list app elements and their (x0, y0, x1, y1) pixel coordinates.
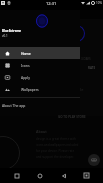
button[interactable]: Back (56, 168, 71, 183)
button[interactable]: Recents (9, 168, 24, 183)
staticText: 12:31 (46, 1, 57, 6)
staticText: 3 DAYS (81, 57, 91, 61)
button[interactable]: Icons (0, 59, 80, 71)
staticText: Wallpapers (21, 87, 39, 92)
staticText: Google (70, 87, 84, 92)
button[interactable]: About The app (0, 99, 80, 111)
button[interactable]: Apply (0, 71, 80, 83)
staticText: About (36, 129, 47, 134)
staticText: GO TO PLAY STORE (58, 115, 86, 119)
staticText: About The app (2, 103, 26, 108)
staticText: v0.1 (2, 34, 8, 38)
button[interactable]: Screenshot (79, 168, 94, 183)
button[interactable]: Apply theme (88, 154, 100, 166)
button[interactable]: Wallpapers (0, 83, 80, 95)
staticText: design is a great theme with icons and w… (36, 137, 79, 159)
staticText: Apply (21, 75, 30, 80)
staticText: 10% (96, 1, 102, 5)
button[interactable]: Home (0, 47, 80, 59)
staticText: Home (21, 51, 31, 56)
staticText: Icons (21, 63, 30, 68)
staticText: BlueExtreme (2, 29, 22, 33)
button[interactable]: Home (32, 168, 47, 183)
staticText: RATE (88, 66, 96, 70)
